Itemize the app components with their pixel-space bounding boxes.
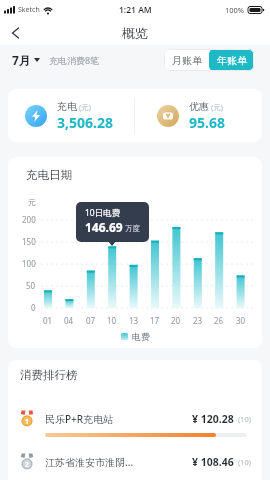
staticText: Sketch — [18, 5, 40, 15]
button[interactable]: 2 — [20, 453, 252, 470]
staticText: 150 — [22, 236, 36, 247]
staticText: 04 — [64, 315, 74, 326]
staticText: 年账单 — [217, 54, 247, 67]
staticText: 充电消费8笔 — [49, 54, 100, 66]
staticText: 100 — [22, 258, 36, 269]
staticText: 1 — [25, 417, 29, 426]
staticText: 江苏省淮安市淮阴... — [45, 455, 134, 469]
staticText: 10 — [107, 315, 117, 326]
staticText: 7月 — [12, 52, 31, 68]
staticText: 17 — [150, 315, 160, 326]
staticText: 20 — [171, 315, 181, 326]
staticText: 07 — [86, 315, 96, 326]
staticText: 95.68 — [189, 113, 225, 132]
staticText: 电费 — [132, 331, 150, 342]
staticText: 充电 — [57, 100, 77, 113]
button[interactable]: 年账单 — [209, 49, 254, 71]
staticText: (元) — [211, 102, 223, 112]
staticText: 优惠 — [189, 100, 209, 113]
button[interactable]: 月账单 — [164, 49, 209, 71]
staticText: 3,506.28 — [57, 113, 113, 132]
button[interactable]: 1 — [20, 410, 252, 427]
staticText: 充电日期 — [26, 168, 72, 182]
staticText: 1:21 AM — [119, 4, 152, 16]
button[interactable]: 7月 — [12, 52, 40, 68]
staticText: 23 — [193, 315, 203, 326]
staticText: (元) — [79, 102, 91, 112]
staticText: 10日电费 — [85, 207, 121, 219]
staticText: 概览 — [122, 25, 148, 41]
staticText: 月账单 — [172, 54, 202, 67]
staticText: 26 — [214, 315, 224, 326]
staticText: 万度 — [125, 224, 140, 233]
staticText: 元 — [28, 197, 36, 207]
staticText: 0 — [31, 302, 36, 313]
staticText: (10) — [238, 414, 252, 424]
staticText: 146.69 — [85, 219, 123, 235]
staticText: 2 — [25, 460, 29, 469]
staticText: 13 — [129, 315, 139, 326]
staticText: 消费排行榜 — [20, 368, 78, 382]
staticText: 01 — [43, 315, 53, 326]
staticText: 200 — [22, 214, 36, 225]
button[interactable] — [0, 20, 30, 45]
staticText: 30 — [236, 315, 246, 326]
staticText: (10) — [238, 457, 252, 467]
staticText: ¥ 108.46 — [192, 455, 234, 469]
staticText: 民乐P+R充电站 — [45, 412, 114, 426]
staticText: ¥ 120.28 — [192, 412, 234, 426]
staticText: 100% — [225, 5, 245, 15]
staticText: 50 — [26, 280, 36, 291]
